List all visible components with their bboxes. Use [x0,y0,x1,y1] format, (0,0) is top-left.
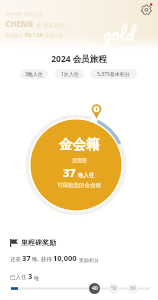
staticText: CHENG [5,18,34,29]
staticText: 大中华区 尊享会籍 [5,11,43,17]
staticText: 晚入住 [78,172,95,179]
staticText: 40 [92,285,98,292]
staticText: 50 [111,285,117,292]
staticText: 晚, [32,255,39,263]
staticText: 奖励积分 [5,33,23,39]
staticText: 37 [22,253,31,263]
staticText: 奖励积分 [79,257,99,263]
staticText: 已入住 [10,274,27,281]
staticText: 37 [63,165,76,180]
button[interactable]: 60 [127,283,138,294]
staticText: gold [103,18,135,50]
staticText: 金 尊享会员 [36,21,65,29]
staticText: 还差 [10,256,21,263]
button[interactable]: 3晚入住 [20,69,48,79]
staticText: 可保留您的金会籍 [57,182,101,189]
staticText: 1次入住 [61,71,79,78]
staticText: 5,375基本积分 [97,71,130,78]
staticText: 2024 会员旅程 [0,53,158,65]
button[interactable]: 40 [89,283,100,294]
staticText: 晚 [34,275,39,281]
staticText: 里程碑奖励 [21,238,56,247]
button[interactable]: 5,375基本积分 [90,69,137,79]
button[interactable]: Settings [140,2,154,16]
staticText: 60 [130,285,136,292]
staticText: 3晚入住 [25,71,43,78]
staticText: 金会籍 [59,136,100,153]
staticText: 获得 [41,256,52,263]
staticText: 查看详情 [45,33,63,39]
button[interactable]: 1次入住 [55,69,84,79]
staticText: 您需要 [72,157,87,163]
staticText: 19,118 [24,31,43,39]
staticText: 10,000 [53,253,77,263]
staticText: 3 [28,271,33,281]
button[interactable]: 50 [108,283,119,294]
